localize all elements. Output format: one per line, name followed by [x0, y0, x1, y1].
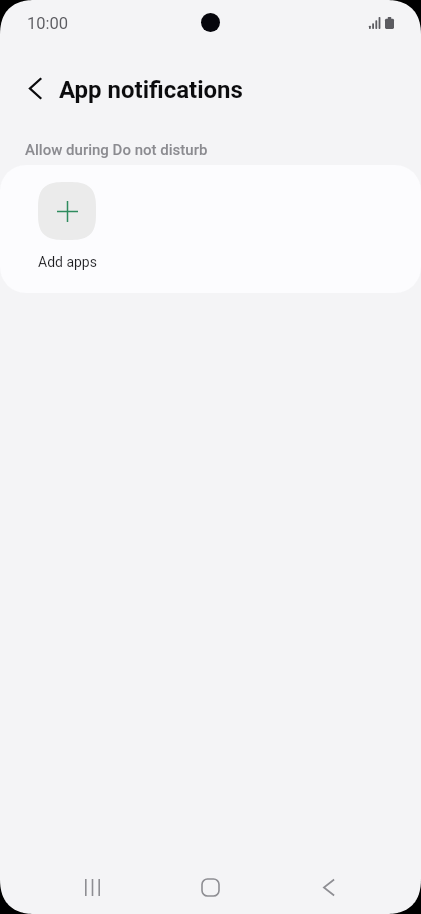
button[interactable]: Home: [171, 862, 249, 912]
staticText: Allow during Do not disturb: [25, 141, 208, 159]
staticText: Add apps: [38, 254, 97, 270]
other: Battery: [385, 17, 394, 29]
button[interactable]: Add apps: [38, 182, 97, 270]
button[interactable]: Navigate up: [12, 66, 57, 111]
other: Mobile signal: [369, 17, 381, 29]
button[interactable]: Back: [289, 862, 367, 912]
button[interactable]: Recent apps: [53, 862, 131, 912]
staticText: App notifications: [59, 76, 243, 104]
staticText: 10:00: [27, 14, 69, 33]
